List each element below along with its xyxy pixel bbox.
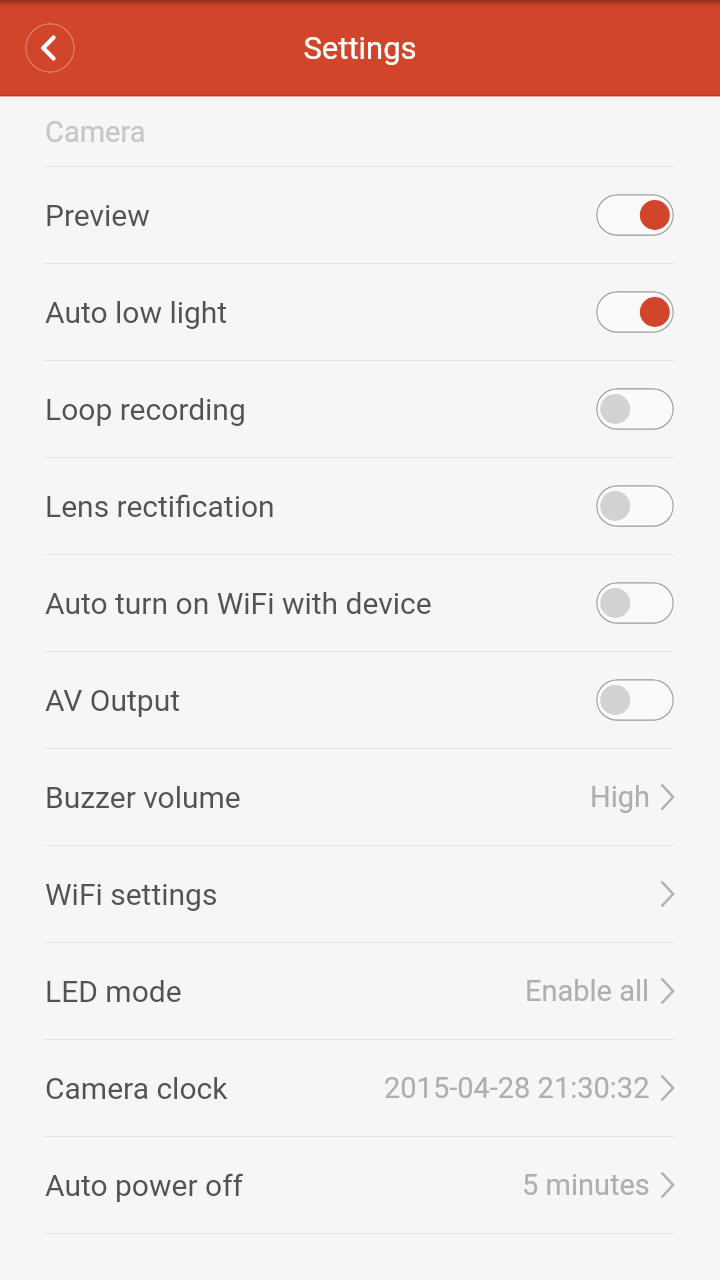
staticText: Buzzer volume [45, 780, 590, 815]
staticText: Auto power off [45, 1168, 522, 1203]
button[interactable]: Off [596, 485, 674, 527]
button[interactable]: Auto turn on WiFi with device [0, 555, 720, 651]
button[interactable]: Back [25, 23, 75, 73]
button[interactable]: Camera clock [0, 1040, 720, 1136]
staticText: Camera [45, 115, 146, 149]
staticText: WiFi settings [45, 877, 661, 912]
staticText: High [590, 780, 650, 814]
button[interactable]: Auto low light [0, 264, 720, 360]
button[interactable]: On [596, 194, 674, 236]
staticText: Auto turn on WiFi with device [45, 586, 596, 621]
staticText: Camera clock [45, 1071, 384, 1106]
button[interactable]: On [596, 291, 674, 333]
button[interactable]: WiFi settings [0, 846, 720, 942]
staticText: AV Output [45, 683, 596, 718]
button[interactable]: LED mode [0, 943, 720, 1039]
button[interactable]: Off [596, 679, 674, 721]
staticText: Settings [303, 30, 417, 66]
staticText: Loop recording [45, 392, 596, 427]
button[interactable]: Buzzer volume [0, 749, 720, 845]
button[interactable]: Preview [0, 167, 720, 263]
button[interactable]: Off [596, 388, 674, 430]
staticText: Lens rectification [45, 489, 596, 524]
button[interactable]: Loop recording [0, 361, 720, 457]
staticText: Preview [45, 198, 596, 233]
staticText: 5 minutes [522, 1168, 650, 1202]
staticText: LED mode [45, 974, 525, 1009]
button[interactable]: Auto power off [0, 1137, 720, 1233]
staticText: Enable all [525, 974, 650, 1008]
button[interactable]: AV Output [0, 652, 720, 748]
button[interactable]: Off [596, 582, 674, 624]
staticText: Auto low light [45, 295, 596, 330]
staticText: 2015-04-28 21:30:32 [384, 1071, 650, 1105]
button[interactable]: Lens rectification [0, 458, 720, 554]
